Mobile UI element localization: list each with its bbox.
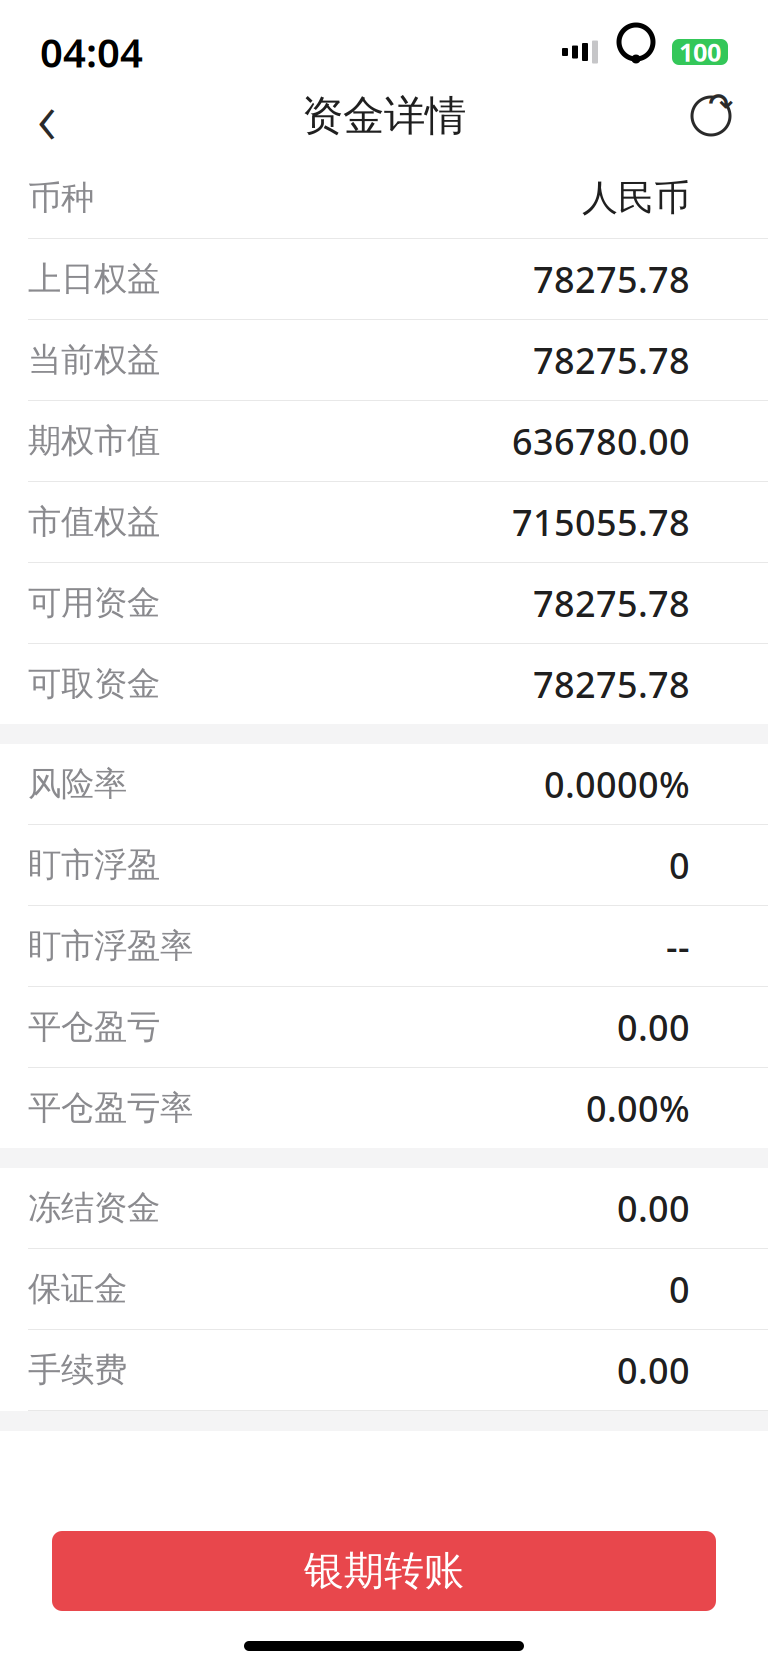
staticText: 冻结资金 [28,1187,160,1228]
staticText: 手续费 [28,1349,127,1390]
staticText: 上日权益 [28,258,160,299]
staticText: 市值权益 [28,501,160,542]
staticText: 期权市值 [28,420,160,461]
button[interactable]: 刷新 [676,81,746,151]
staticText: 保证金 [28,1268,127,1309]
staticText: 资金详情 [302,91,466,141]
button[interactable]: 银期转账 [52,1531,716,1611]
staticText: 0.00 [617,1003,690,1051]
staticText: -- [666,922,690,970]
staticText: 平仓盈亏率 [28,1087,193,1128]
staticText: 盯市浮盈 [28,844,160,885]
staticText: 636780.00 [512,417,690,465]
staticText: 0.00% [586,1084,690,1132]
staticText: 0.00 [617,1346,690,1394]
staticText: 0 [669,841,690,889]
staticText: 04:04 [40,25,143,78]
staticText: 78275.78 [533,336,690,384]
staticText: 平仓盈亏 [28,1006,160,1047]
staticText: 盯市浮盈率 [28,925,193,966]
staticText: 78275.78 [533,660,690,708]
staticText: 0.0000% [544,760,690,808]
staticText: 715055.78 [512,498,690,546]
staticText: 币种 [28,177,94,218]
staticText: 78275.78 [533,255,690,303]
staticText: 人民币 [582,176,690,220]
staticText: 100 [679,35,721,69]
staticText: 当前权益 [28,339,160,380]
staticText: 78275.78 [533,579,690,627]
staticText: ↷ [708,87,733,121]
staticText: 0.00 [617,1184,690,1232]
staticText: ‹ [37,66,57,166]
staticText: 银期转账 [304,1546,464,1595]
staticText: 风险率 [28,763,127,804]
button[interactable]: 返回 [12,81,82,151]
staticText: 可取资金 [28,663,160,704]
staticText: 0 [669,1265,690,1313]
staticText: 可用资金 [28,582,160,623]
